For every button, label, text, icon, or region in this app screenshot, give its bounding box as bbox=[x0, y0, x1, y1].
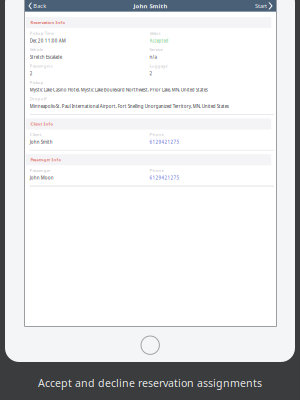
button[interactable]: Back bbox=[25, 0, 49, 12]
staticText: Reservation Info bbox=[30, 20, 65, 25]
staticText: Back bbox=[33, 2, 46, 10]
staticText: Pickup bbox=[30, 79, 44, 85]
staticText: John Moon bbox=[30, 175, 54, 181]
staticText: Client bbox=[30, 132, 41, 137]
staticText: John Smith bbox=[30, 139, 53, 145]
staticText: Passengers bbox=[30, 63, 53, 69]
staticText: Phone bbox=[149, 167, 163, 173]
staticText: 2 bbox=[149, 70, 152, 76]
staticText: Luggage bbox=[149, 63, 167, 69]
staticText: Phone bbox=[149, 132, 163, 137]
staticText: Accept and decline reservation assignmen… bbox=[38, 376, 262, 390]
staticText: Dropoff bbox=[30, 96, 47, 101]
staticText: Start bbox=[255, 2, 267, 10]
staticText: Accepted bbox=[149, 38, 168, 44]
staticText: Pickup Time bbox=[30, 30, 54, 36]
staticText: 6129421275 bbox=[149, 175, 179, 181]
staticText: Stretch Escalade bbox=[30, 54, 62, 60]
staticText: Service bbox=[149, 47, 162, 52]
staticText: n/a bbox=[149, 54, 156, 60]
staticText: Mystic Lake Casino Hotel, Mystic Lake Bo… bbox=[30, 87, 208, 93]
staticText: Vehicle bbox=[30, 47, 43, 52]
staticText: John Smith bbox=[133, 2, 167, 10]
staticText: Client Info bbox=[30, 121, 53, 127]
button[interactable]: Start bbox=[252, 0, 276, 12]
staticText: 6129421275 bbox=[149, 139, 179, 145]
staticText: Dec 20 11:00 AM bbox=[30, 38, 66, 44]
staticText: Status bbox=[149, 30, 160, 36]
staticText: Passenger Info bbox=[30, 157, 61, 162]
staticText: 2 bbox=[30, 70, 33, 76]
staticText: Minneapolis-St. Paul International Airpo… bbox=[30, 103, 229, 109]
staticText: Passenger bbox=[30, 167, 51, 173]
